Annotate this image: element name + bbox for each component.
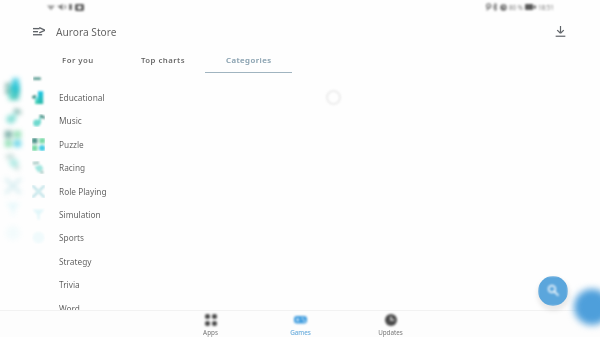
button[interactable]: Categories — [205, 50, 292, 73]
staticText: Updates — [360, 328, 421, 337]
button[interactable]: For you — [34, 50, 121, 73]
staticText: 80 % — [509, 3, 523, 11]
staticText: Strategy — [59, 256, 92, 267]
button[interactable]: Strategy — [0, 250, 600, 273]
staticText: 18:51 — [538, 3, 554, 11]
staticText: Role Playing — [59, 186, 107, 197]
button[interactable]: Top charts — [119, 50, 206, 73]
button[interactable]: Word — [0, 297, 600, 320]
button[interactable]: Games — [270, 309, 331, 337]
button[interactable]: Updates — [360, 309, 421, 337]
button[interactable]: Sports — [0, 226, 600, 249]
staticText: Simulation — [59, 209, 101, 220]
staticText: For you — [62, 55, 94, 66]
staticText: Word — [59, 303, 80, 314]
button[interactable]: Music — [0, 109, 600, 132]
button[interactable]: Sort order — [27, 19, 51, 43]
button[interactable]: Racing — [0, 156, 600, 179]
button[interactable]: Trivia — [0, 273, 600, 296]
staticText: Categories — [226, 55, 272, 66]
staticText: Games — [270, 328, 331, 337]
button[interactable]: Downloads — [548, 19, 572, 43]
staticText: Sports — [59, 232, 85, 243]
button[interactable]: Role Playing — [0, 180, 600, 203]
staticText: Puzzle — [59, 139, 84, 150]
staticText: Aurora Store — [56, 25, 117, 39]
button[interactable]: Apps — [180, 309, 241, 337]
staticText: Music — [59, 115, 82, 126]
staticText: Trivia — [59, 279, 80, 290]
button[interactable]: Puzzle — [0, 133, 600, 156]
staticText: Racing — [59, 162, 86, 173]
button[interactable]: Educational — [0, 86, 600, 109]
button[interactable]: Search — [538, 276, 568, 306]
staticText: Apps — [180, 328, 241, 337]
staticText: Educational — [59, 92, 105, 103]
staticText: Top charts — [141, 55, 185, 66]
button[interactable]: Simulation — [0, 203, 600, 226]
